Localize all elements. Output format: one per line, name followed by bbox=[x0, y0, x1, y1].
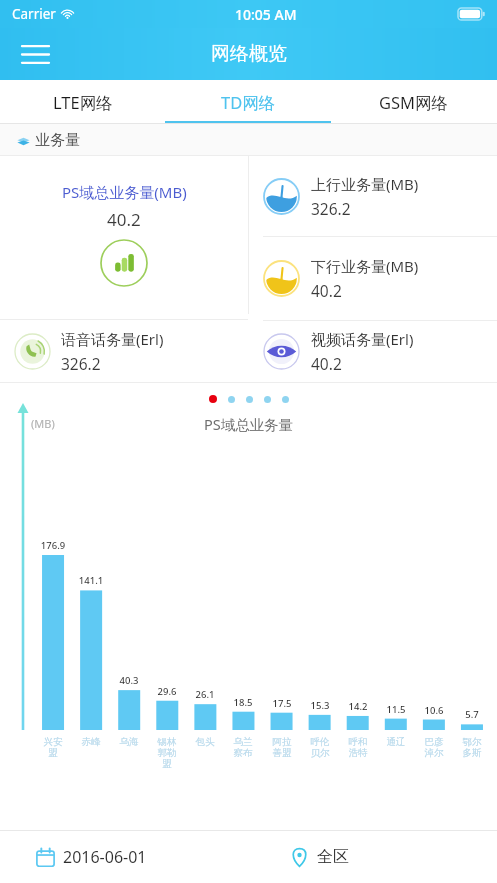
button[interactable]: TD网络 bbox=[165, 80, 331, 124]
staticText: TD网络 bbox=[221, 91, 276, 114]
staticText: 176.9 bbox=[34, 539, 72, 552]
staticText: 10:05 AM bbox=[235, 5, 297, 24]
staticText: 141.1 bbox=[72, 574, 110, 587]
staticText: 40.2 bbox=[107, 208, 141, 231]
staticText: 15.3 bbox=[301, 699, 339, 712]
button[interactable]: 下行业务量(MB) bbox=[263, 237, 497, 320]
staticText: 语音话务量(Erl) bbox=[61, 329, 164, 349]
staticText: 鄂尔 多斯 bbox=[453, 736, 491, 759]
button[interactable]: LTE网络 bbox=[0, 80, 165, 124]
staticText: 下行业务量(MB) bbox=[311, 256, 419, 276]
button[interactable]: Page 4 bbox=[264, 396, 271, 403]
button[interactable]: 语音话务量(Erl) bbox=[14, 320, 248, 382]
button[interactable]: Page 1 bbox=[209, 395, 217, 403]
staticText: 巴彦 淖尔 bbox=[415, 736, 453, 759]
staticText: 兴安 盟 bbox=[34, 736, 72, 759]
staticText: 326.2 bbox=[311, 198, 351, 219]
staticText: 呼和 浩特 bbox=[339, 736, 377, 759]
staticText: 40.3 bbox=[110, 674, 148, 687]
staticText: 全区 bbox=[317, 847, 349, 867]
staticText: 40.2 bbox=[311, 353, 342, 374]
staticText: 视频话务量(Erl) bbox=[311, 329, 414, 349]
button[interactable]: PS域总业务量(MB) bbox=[0, 156, 248, 319]
staticText: 呼伦 贝尔 bbox=[301, 736, 339, 759]
staticText: 2016-06-01 bbox=[63, 846, 147, 868]
button[interactable]: 上行业务量(MB) bbox=[263, 156, 497, 236]
staticText: 5.7 bbox=[453, 708, 491, 721]
staticText: GSM网络 bbox=[379, 91, 449, 114]
staticText: 14.2 bbox=[339, 700, 377, 713]
staticText: 包头 bbox=[186, 736, 224, 748]
staticText: 阿拉 善盟 bbox=[263, 736, 301, 759]
button[interactable]: Page 3 bbox=[246, 396, 253, 403]
staticText: 10.6 bbox=[415, 704, 453, 717]
staticText: 乌兰 察布 bbox=[224, 736, 262, 759]
staticText: (MB) bbox=[31, 416, 55, 431]
staticText: 赤峰 bbox=[72, 736, 110, 748]
button[interactable]: Menu bbox=[12, 31, 58, 77]
staticText: 17.5 bbox=[263, 697, 301, 710]
staticText: 上行业务量(MB) bbox=[311, 174, 419, 194]
button[interactable]: 视频话务量(Erl) bbox=[263, 321, 497, 382]
staticText: 网络概览 bbox=[211, 42, 287, 66]
staticText: PS域总业务量(MB) bbox=[62, 182, 187, 202]
button[interactable]: Page 2 bbox=[228, 396, 235, 403]
staticText: 11.5 bbox=[377, 703, 415, 716]
staticText: 锡林 郭勒 盟 bbox=[148, 736, 186, 770]
staticText: 29.6 bbox=[148, 685, 186, 698]
staticText: 18.5 bbox=[224, 696, 262, 709]
staticText: 40.2 bbox=[311, 280, 342, 301]
staticText: 通辽 bbox=[377, 736, 415, 748]
staticText: LTE网络 bbox=[53, 91, 113, 114]
staticText: 326.2 bbox=[61, 353, 101, 374]
button[interactable]: 全区 bbox=[290, 831, 497, 883]
button[interactable]: 2016-06-01 bbox=[36, 831, 248, 883]
staticText: 业务量 bbox=[35, 131, 80, 150]
staticText: 26.1 bbox=[186, 688, 224, 701]
staticText: 乌海 bbox=[110, 736, 148, 748]
staticText: PS域总业务量 bbox=[204, 414, 294, 434]
button[interactable]: Page 5 bbox=[282, 396, 289, 403]
staticText: Carrier bbox=[12, 5, 56, 23]
button[interactable]: GSM网络 bbox=[331, 80, 497, 124]
